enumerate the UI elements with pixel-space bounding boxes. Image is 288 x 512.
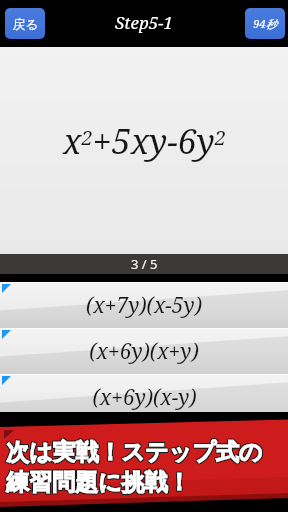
- staticText: 次は実戦！ステップ式の: [6, 439, 263, 468]
- staticText: Step5-1: [115, 11, 173, 34]
- staticText: (x+6y)(x-y): [92, 383, 197, 412]
- staticText: 次は実戦！ステップ式の: [7, 439, 264, 468]
- staticText: 次は実戦！ステップ式の: [5, 438, 262, 467]
- button[interactable]: 戻る: [5, 8, 45, 39]
- button[interactable]: 次は実戦！ステップ式の練習問題に挑戦！: [0, 412, 288, 512]
- staticText: 練習問題に挑戦！: [7, 468, 192, 497]
- staticText: 練習問題に挑戦！: [6, 467, 191, 496]
- staticText: 次は実戦！ステップ式の: [7, 438, 264, 467]
- staticText: 練習問題に挑戦！: [6, 469, 191, 498]
- staticText: x2+5xy-6y2: [63, 118, 226, 164]
- button[interactable]: (x+6y)(x-y): [0, 374, 288, 420]
- button[interactable]: 残り時間 94秒: [245, 8, 285, 39]
- staticText: 練習問題に挑戦！: [6, 468, 191, 497]
- staticText: 次は実戦！ステップ式の: [6, 437, 263, 466]
- staticText: 練習問題に挑戦！: [5, 469, 190, 498]
- staticText: (x+6y)(x+y): [89, 337, 199, 366]
- staticText: 次は実戦！ステップ式の: [7, 437, 264, 466]
- staticText: 練習問題に挑戦！: [5, 467, 190, 496]
- staticText: 練習問題に挑戦！: [5, 468, 190, 497]
- staticText: 次は実戦！ステップ式の: [5, 437, 262, 466]
- staticText: 練習問題に挑戦！: [7, 467, 192, 496]
- staticText: (x+7y)(x-5y): [86, 291, 202, 320]
- button[interactable]: (x+7y)(x-5y): [0, 282, 288, 328]
- button[interactable]: (x+6y)(x+y): [0, 328, 288, 374]
- staticText: 練習問題に挑戦！: [7, 469, 192, 498]
- staticText: 94秒: [253, 16, 277, 31]
- staticText: 次は実戦！ステップ式の: [5, 439, 262, 468]
- staticText: 戻る: [12, 16, 39, 32]
- staticText: 3 / 5: [131, 255, 158, 273]
- staticText: 次は実戦！ステップ式の: [6, 438, 263, 467]
